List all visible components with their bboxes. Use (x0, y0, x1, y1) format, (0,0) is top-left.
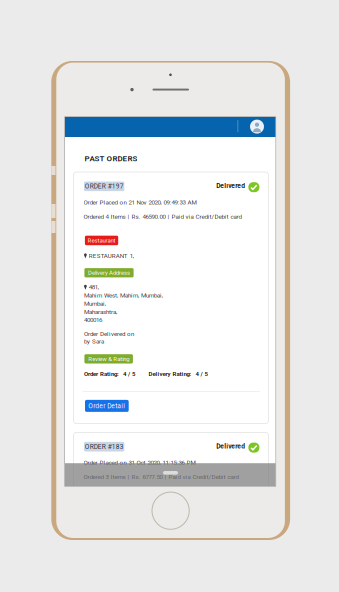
button[interactable]: Menu (65, 117, 275, 137)
button[interactable]: ORDER #183 (84, 442, 124, 451)
staticText: Restaurant (88, 237, 116, 244)
staticText: Mumbai, (84, 300, 106, 307)
button[interactable]: Order Detail (85, 400, 129, 412)
staticText: Review & Rating (88, 355, 129, 362)
staticText: Delivery Address (88, 269, 130, 276)
staticText: Order Placed on 31 Oct 2020, 11:15:36 PM (84, 459, 196, 466)
staticText: ORDER #197 (85, 182, 124, 190)
staticText: Order Detail (88, 402, 125, 410)
button[interactable]: Review & Rating (84, 354, 133, 363)
staticText: RESTAURANT 1, (89, 252, 134, 259)
staticText: Order Placed on 21 Nov 2020, 09:49:33 AM (84, 199, 197, 206)
staticText: Ordered 4 Items | Rs. 46590.00 | Paid vi… (84, 213, 242, 220)
staticText: by Sara (84, 338, 104, 345)
staticText: Ordered 3 Items | Rs. 6777.50 | Paid via… (84, 473, 239, 481)
button[interactable]: Delivery Address (84, 268, 134, 277)
staticText: ORDER #183 (85, 443, 124, 450)
button[interactable]: Account (250, 120, 264, 134)
staticText: PAST ORDERS (84, 154, 137, 163)
staticText: Order Delivered on (84, 330, 134, 338)
button[interactable]: ORDER #197 (84, 181, 124, 191)
staticText: Delivery Rating: 4 / 5 (148, 370, 207, 377)
staticText: Order Rating: 4 / 5 (84, 370, 135, 377)
staticText: Delivered (216, 442, 245, 450)
button[interactable]: Restaurant (85, 236, 118, 245)
staticText: Delivered (216, 182, 245, 190)
staticText: Maharashtra, (84, 308, 117, 315)
staticText: 400016 (84, 316, 102, 324)
staticText: Mahim West, Mahim, Mumbai, (84, 292, 163, 299)
staticText: 481, (89, 284, 99, 291)
